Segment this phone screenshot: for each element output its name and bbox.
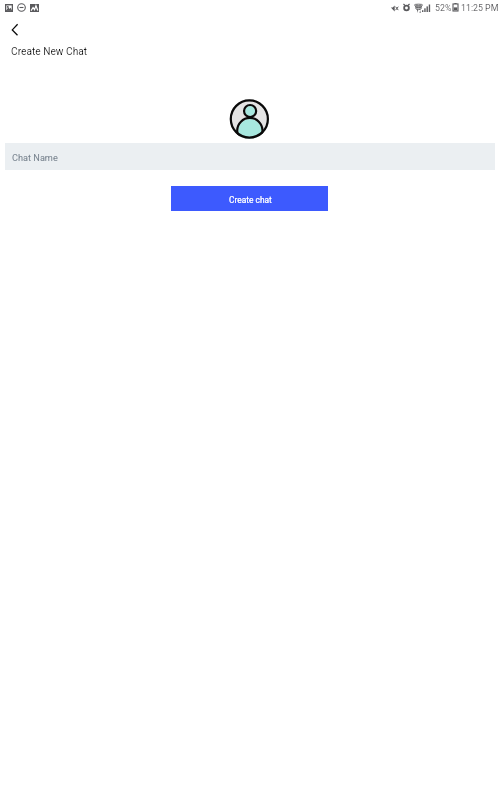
staticText: Chat Name — [12, 152, 58, 163]
button[interactable]: Create chat — [171, 186, 328, 211]
button[interactable]: Back — [0, 18, 30, 42]
button[interactable]: Chat Name — [5, 143, 495, 170]
staticText: Create New Chat — [11, 46, 88, 58]
staticText: 52% — [435, 3, 452, 13]
staticText: Create chat — [229, 195, 272, 205]
staticText: 11:25 PM — [461, 3, 499, 13]
